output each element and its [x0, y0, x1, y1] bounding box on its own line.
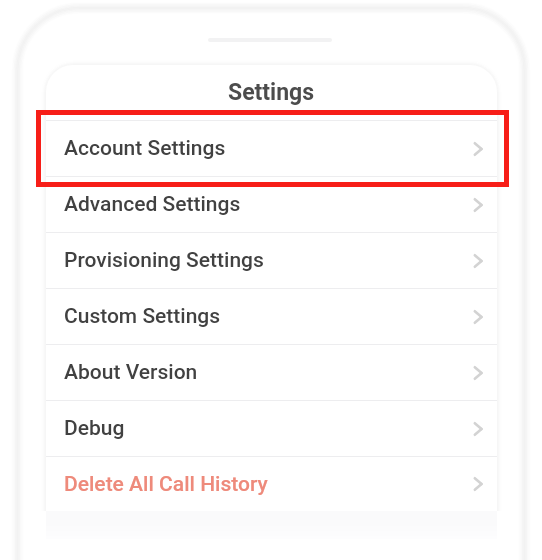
staticText: Advanced Settings — [64, 192, 241, 217]
staticText: About Version — [64, 360, 198, 385]
button[interactable]: Provisioning Settings — [46, 232, 497, 288]
other: Open About Version — [470, 365, 486, 381]
button[interactable]: Account Settings — [46, 120, 497, 176]
staticText: Account Settings — [64, 136, 226, 161]
staticText: Settings — [228, 79, 315, 106]
other: Open Debug — [470, 421, 486, 437]
other: Open Provisioning Settings — [470, 253, 486, 269]
other: Open Account Settings — [470, 141, 486, 157]
staticText: Custom Settings — [64, 304, 221, 329]
button[interactable]: Advanced Settings — [46, 176, 497, 232]
button[interactable]: About Version — [46, 344, 497, 400]
button[interactable]: Custom Settings — [46, 288, 497, 344]
staticText: Debug — [64, 416, 125, 441]
button[interactable]: Debug — [46, 400, 497, 456]
other: Open Advanced Settings — [470, 197, 486, 213]
button[interactable]: Delete All Call History — [46, 456, 497, 511]
staticText: Delete All Call History — [64, 472, 268, 497]
staticText: Provisioning Settings — [64, 248, 264, 273]
other: Open Delete All Call History — [470, 476, 486, 492]
other: Open Custom Settings — [470, 309, 486, 325]
